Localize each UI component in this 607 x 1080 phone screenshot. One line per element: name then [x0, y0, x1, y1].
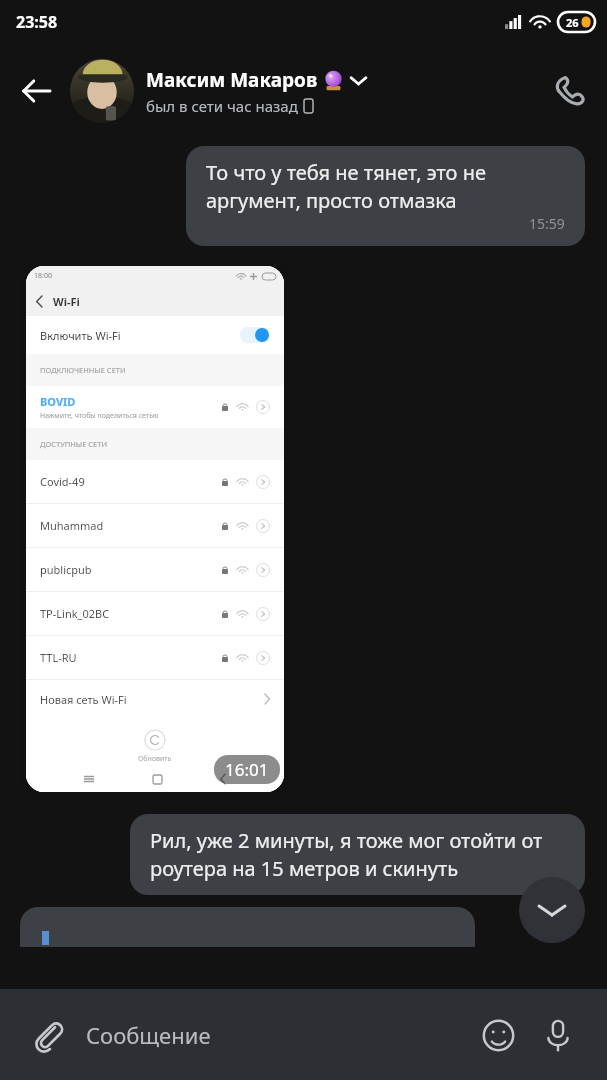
staticText: Максим Макаров	[146, 67, 318, 93]
staticText: То что у тебя не тянет, это не аргумент,…	[206, 159, 565, 214]
staticText: Обновить	[138, 754, 172, 764]
staticText: BOVID	[40, 394, 76, 409]
button[interactable]: Максим Макаров	[70, 59, 541, 123]
staticText: 23:58	[16, 11, 58, 33]
staticText: 16:01	[225, 758, 269, 781]
button[interactable]: Back	[8, 63, 64, 119]
staticText: Covid-49	[40, 474, 85, 489]
button[interactable]: Screenshot of Wi-Fi settings	[20, 260, 290, 798]
staticText: publicpub	[40, 562, 92, 577]
button[interactable]: Сообщение	[86, 1020, 471, 1050]
staticText: ДОСТУПНЫЕ СЕТИ	[40, 439, 108, 449]
staticText: TTL-RU	[40, 650, 77, 665]
button[interactable]	[20, 907, 475, 947]
staticText: ПОДКЛЮЧЕННЫЕ СЕТИ	[40, 365, 126, 375]
staticText: 18:00	[34, 271, 52, 281]
staticText: Новая сеть Wi-Fi	[40, 692, 127, 707]
staticText: Нажмите, чтобы поделиться сетью	[40, 411, 159, 421]
button[interactable]: То что у тебя не тянет, это не аргумент,…	[186, 146, 585, 246]
button[interactable]: Attach	[22, 1009, 74, 1061]
button[interactable]: Voice message	[531, 1008, 585, 1062]
staticText: Включить Wi-Fi	[40, 328, 121, 343]
button[interactable]: Scroll to bottom	[519, 877, 585, 943]
staticText: Рил, уже 2 минуты, я тоже мог отойти от …	[150, 827, 565, 882]
button[interactable]: Рил, уже 2 минуты, я тоже мог отойти от …	[130, 814, 585, 895]
staticText: 15:59	[529, 214, 565, 233]
staticText: TP-Link_02BC	[40, 606, 110, 621]
staticText: Сообщение	[86, 1020, 211, 1050]
staticText: Wi-Fi	[53, 294, 80, 309]
staticText: 26	[566, 15, 579, 30]
staticText: Muhammad	[40, 518, 104, 533]
button[interactable]: Call	[541, 62, 599, 120]
button[interactable]: Emoji	[471, 1008, 525, 1062]
staticText: был в сети час назад	[146, 96, 298, 116]
